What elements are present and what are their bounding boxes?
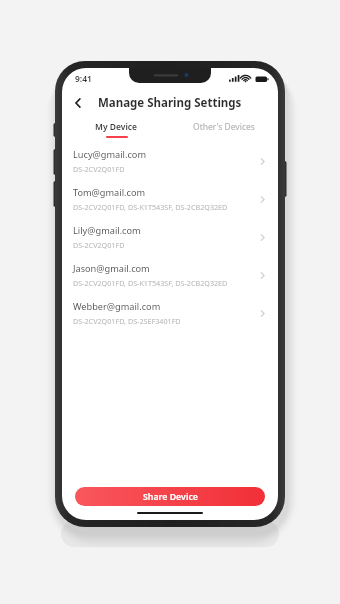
button[interactable]: Share Device [75, 487, 265, 506]
staticText: DS-2CV2Q01FD, DS-K1T543SF, DS-2CB2Q32ED [73, 202, 228, 212]
staticText: My Device [95, 121, 138, 133]
staticText: 9:41 [75, 73, 92, 85]
button[interactable]: Lucy@gmail.com [62, 142, 278, 180]
staticText: DS-2CV2Q01FD, DS-2SEF3401FD [73, 316, 181, 326]
staticText: DS-2CV2Q01FD [73, 240, 125, 250]
button[interactable]: Back [66, 91, 90, 115]
staticText: Jason@gmail.com [73, 262, 150, 275]
staticText: Lucy@gmail.com [73, 148, 147, 161]
staticText: Share Device [143, 491, 198, 503]
staticText: DS-2CV2Q01FD, DS-K1T543SF, DS-2CB2Q32ED [73, 278, 228, 288]
staticText: Tom@gmail.com [73, 186, 146, 199]
button[interactable]: My Device [62, 117, 170, 142]
button[interactable]: Other's Devices [170, 117, 278, 142]
button[interactable]: Webber@gmail.com [62, 294, 278, 332]
staticText: DS-2CV2Q01FD [73, 164, 125, 174]
staticText: Manage Sharing Settings [98, 95, 242, 111]
button[interactable]: Tom@gmail.com [62, 180, 278, 218]
staticText: Webber@gmail.com [73, 300, 161, 313]
staticText: Other's Devices [193, 121, 255, 133]
button[interactable]: Jason@gmail.com [62, 256, 278, 294]
staticText: Lily@gmail.com [73, 224, 141, 237]
button[interactable]: Lily@gmail.com [62, 218, 278, 256]
